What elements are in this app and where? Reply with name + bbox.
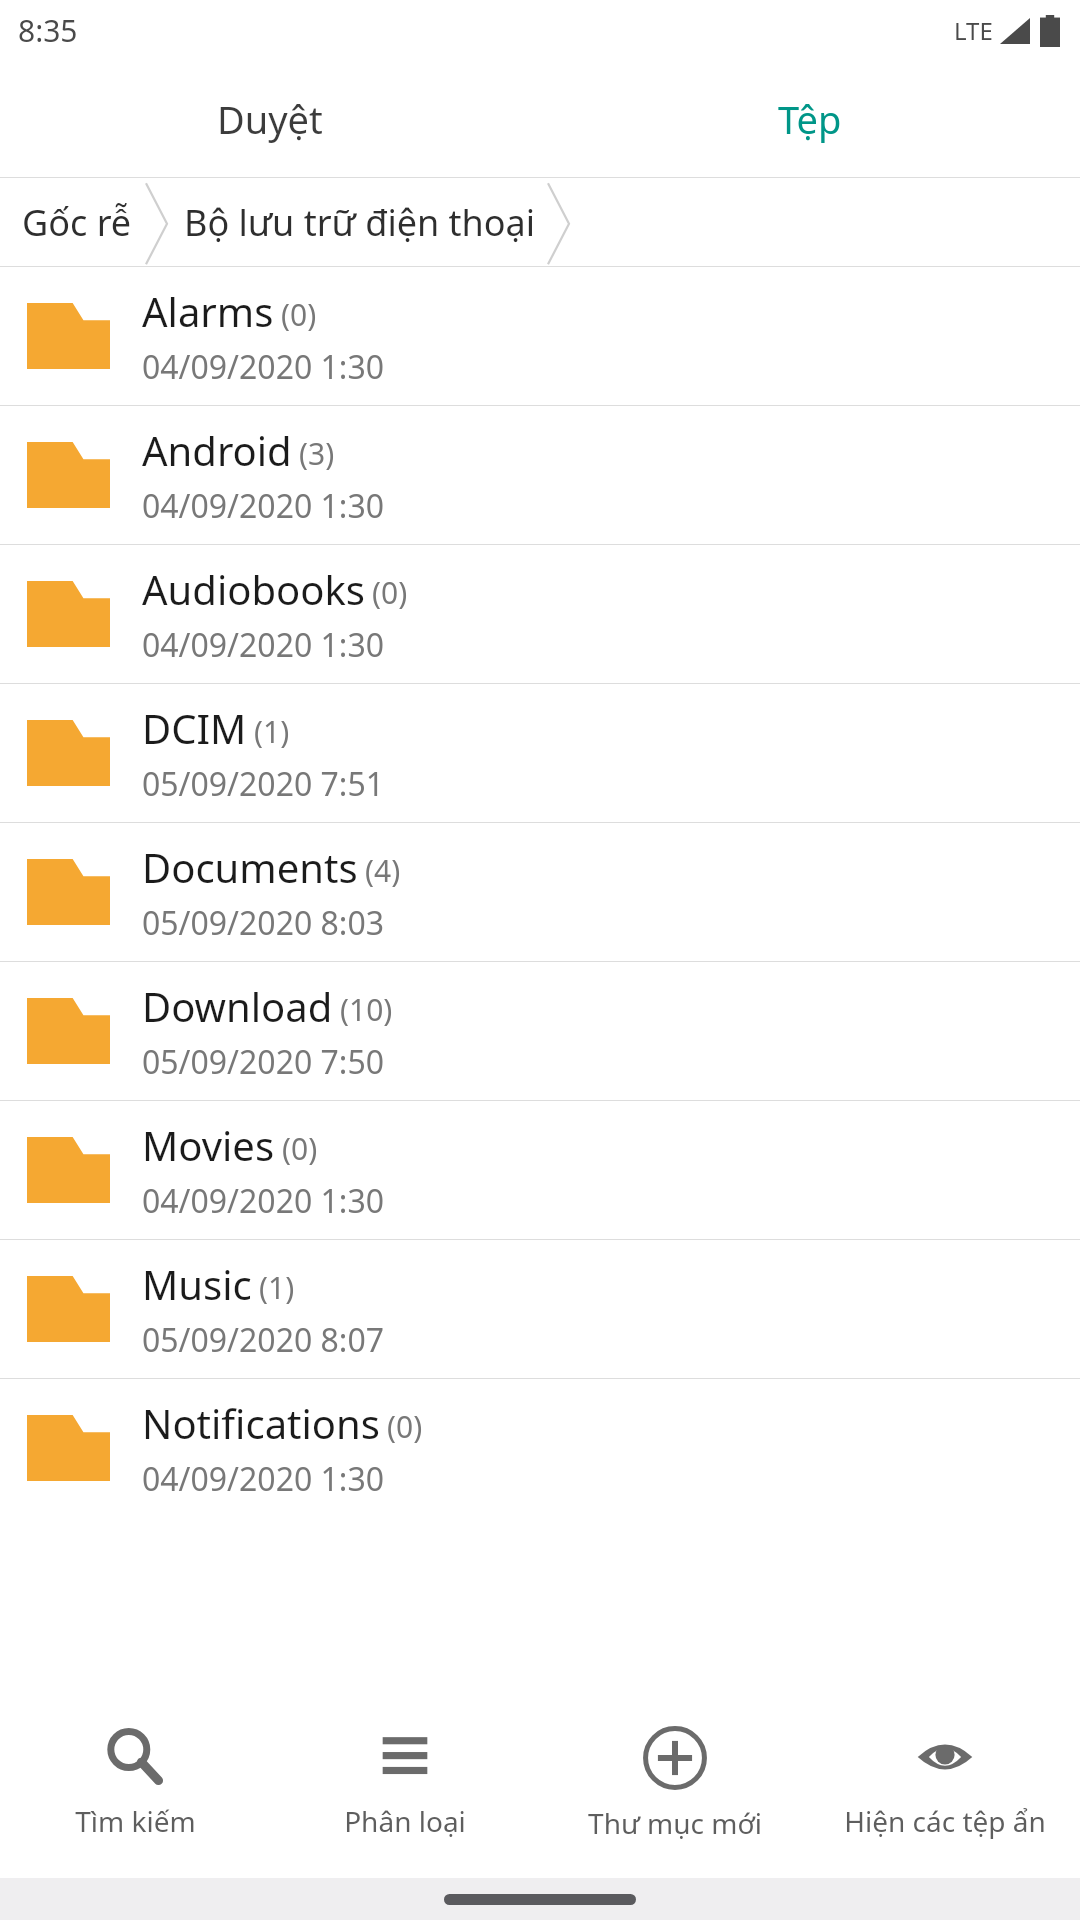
staticText: LTE [954, 14, 993, 47]
staticText: 04/09/2020 1:30 [142, 345, 385, 389]
staticText: Notifications [142, 1396, 380, 1450]
button[interactable]: Movies [0, 1101, 1080, 1239]
staticText: Movies [142, 1118, 275, 1172]
button[interactable]: Bộ lưu trữ điện thoại [170, 178, 546, 266]
staticText: (1) [254, 711, 290, 752]
staticText: (10) [340, 989, 393, 1030]
button[interactable]: Alarms [0, 267, 1080, 405]
staticText: (0) [281, 294, 317, 335]
staticText: (0) [282, 1128, 318, 1169]
staticText: Phân loại [344, 1802, 466, 1840]
button[interactable]: Thư mục mới [540, 1700, 810, 1878]
staticText: Duyệt [217, 93, 323, 145]
staticText: Thư mục mới [588, 1804, 762, 1842]
staticText: Tệp [778, 93, 842, 145]
staticText: 04/09/2020 1:30 [142, 1457, 385, 1501]
staticText: Documents [142, 840, 358, 894]
staticText: 04/09/2020 1:30 [142, 623, 385, 667]
staticText: 05/09/2020 8:03 [142, 901, 385, 945]
staticText: (0) [387, 1406, 423, 1447]
button[interactable]: Notifications [0, 1379, 1080, 1517]
button[interactable]: Music [0, 1240, 1080, 1378]
staticText: Download [142, 979, 333, 1033]
staticText: Audiobooks [142, 562, 365, 616]
button[interactable]: Download [0, 962, 1080, 1100]
staticText: 05/09/2020 7:51 [142, 762, 385, 806]
staticText: Alarms [142, 284, 274, 338]
button[interactable]: Tệp [540, 60, 1080, 177]
staticText: Bộ lưu trữ điện thoại [184, 198, 536, 247]
staticText: Android [142, 423, 292, 477]
staticText: 04/09/2020 1:30 [142, 484, 385, 528]
button[interactable]: Hiện các tệp ẩn [810, 1700, 1080, 1878]
staticText: Music [142, 1257, 252, 1311]
staticText: (0) [372, 572, 408, 613]
staticText: (3) [299, 433, 335, 474]
staticText: 04/09/2020 1:30 [142, 1179, 385, 1223]
button[interactable]: DCIM [0, 684, 1080, 822]
staticText: DCIM [142, 701, 247, 755]
staticText: 05/09/2020 8:07 [142, 1318, 385, 1362]
staticText: 05/09/2020 7:50 [142, 1040, 385, 1084]
button[interactable]: Documents [0, 823, 1080, 961]
staticText: Gốc rễ [22, 198, 132, 247]
staticText: Hiện các tệp ẩn [844, 1802, 1046, 1840]
staticText: 8:35 [18, 10, 78, 51]
button[interactable]: Phân loại [270, 1700, 540, 1878]
button[interactable]: Duyệt [0, 60, 540, 177]
button[interactable]: Audiobooks [0, 545, 1080, 683]
button[interactable]: Tìm kiếm [0, 1700, 270, 1878]
staticText: (4) [365, 850, 401, 891]
staticText: Tìm kiếm [75, 1802, 196, 1840]
button[interactable]: Android [0, 406, 1080, 544]
button[interactable]: Gốc rễ [0, 178, 144, 266]
staticText: (1) [259, 1267, 295, 1308]
